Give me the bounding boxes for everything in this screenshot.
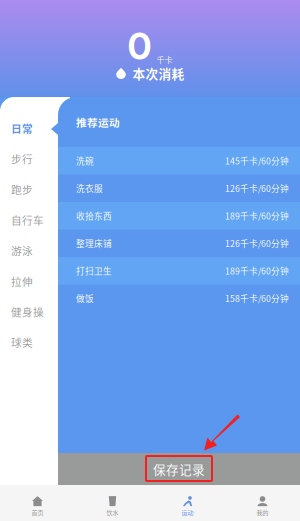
staticText: 0 [127,24,151,68]
staticText: 推荐运动 [76,114,120,130]
button[interactable]: 步行 [0,143,58,174]
staticText: 本次消耗 [132,64,184,82]
staticText: 健身操 [11,304,44,319]
staticText: 126千卡/60分钟 [225,182,289,194]
staticText: 做饭 [76,292,94,304]
staticText: 打扫卫生 [76,264,112,277]
staticText: 球类 [11,334,33,350]
staticText: 189千卡/60分钟 [225,209,289,222]
button[interactable]: 洗碗 [58,147,300,174]
staticText: 洗碗 [76,154,94,167]
button[interactable]: 整理床铺 [58,229,300,257]
staticText: 我的 [256,508,268,517]
staticText: 运动 [181,508,193,517]
button[interactable]: 跑步 [0,174,58,204]
staticText: 步行 [11,151,33,166]
button[interactable]: 健身操 [0,296,58,327]
staticText: 158千卡/60分钟 [225,292,289,304]
staticText: 洗衣服 [76,182,103,194]
button[interactable]: 拉伸 [0,266,58,296]
button[interactable]: 饮水 [75,485,150,521]
button[interactable]: 保存记录 [58,453,300,485]
button[interactable]: 自行车 [0,204,58,235]
button[interactable]: 球类 [0,327,58,357]
button[interactable]: 打扫卫生 [58,257,300,284]
staticText: 日常 [11,120,33,136]
button[interactable]: 做饭 [58,284,300,312]
button[interactable]: 我的 [225,485,300,521]
button[interactable]: 首页 [0,485,75,521]
staticText: 游泳 [11,243,33,258]
button[interactable]: 洗衣服 [58,174,300,202]
staticText: 保存记录 [153,460,205,478]
button[interactable]: 运动 [150,485,225,521]
button[interactable]: 游泳 [0,235,58,266]
staticText: 拉伸 [11,273,33,289]
button[interactable]: 收拾东西 [58,202,300,229]
button[interactable]: 日常 [0,113,58,143]
staticText: 跑步 [11,181,33,197]
staticText: 126千卡/60分钟 [225,237,289,249]
staticText: 189千卡/60分钟 [225,264,289,277]
staticText: 整理床铺 [76,237,112,249]
staticText: 首页 [31,508,43,517]
staticText: 千卡 [156,54,172,65]
staticText: 自行车 [11,212,44,227]
staticText: 收拾东西 [76,209,112,222]
staticText: 饮水 [106,508,118,517]
staticText: 145千卡/60分钟 [225,154,289,167]
